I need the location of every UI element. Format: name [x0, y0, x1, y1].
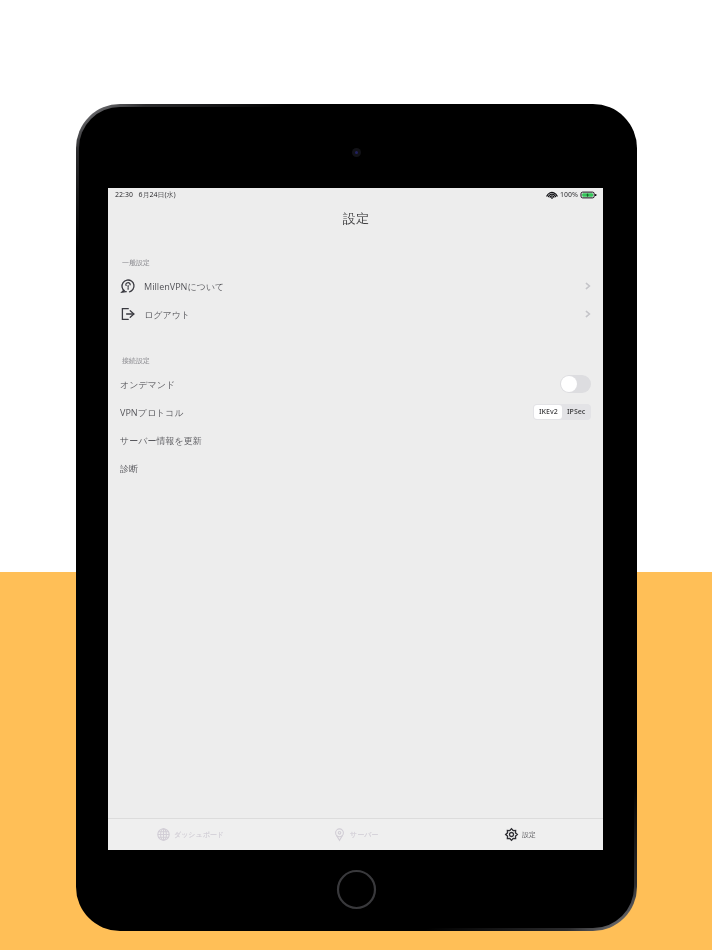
- button[interactable]: ダッシュボード: [108, 819, 273, 850]
- button[interactable]: サーバー: [273, 819, 438, 850]
- staticText: 診断: [120, 463, 138, 474]
- button[interactable]: VPNプロトコル: [108, 398, 603, 426]
- button[interactable]: オンデマンド: [560, 375, 591, 393]
- staticText: IKEv2: [539, 407, 558, 417]
- staticText: 100%: [560, 190, 578, 200]
- button[interactable]: 診断: [108, 454, 603, 482]
- button[interactable]: MillenVPNについて: [108, 272, 603, 300]
- staticText: サーバー: [350, 830, 379, 839]
- staticText: 設定: [343, 210, 369, 226]
- staticText: IPSec: [567, 407, 586, 417]
- staticText: オンデマンド: [120, 379, 176, 390]
- staticText: ダッシュボード: [174, 830, 224, 839]
- button[interactable]: IKEv2: [534, 405, 562, 419]
- button[interactable]: ログアウト: [108, 300, 603, 328]
- button[interactable]: IPSec: [562, 405, 590, 419]
- staticText: ログアウト: [144, 309, 191, 320]
- staticText: 接続設定: [122, 356, 150, 365]
- staticText: VPNプロトコル: [120, 406, 184, 418]
- staticText: MillenVPNについて: [144, 280, 225, 292]
- button[interactable]: オンデマンド: [108, 370, 603, 398]
- staticText: サーバー情報を更新: [120, 435, 202, 446]
- staticText: 設定: [522, 830, 536, 839]
- staticText: 22:30 6月24日(水): [115, 190, 176, 200]
- button[interactable]: サーバー情報を更新: [108, 426, 603, 454]
- button[interactable]: 設定: [438, 819, 603, 850]
- staticText: 一般設定: [122, 258, 150, 267]
